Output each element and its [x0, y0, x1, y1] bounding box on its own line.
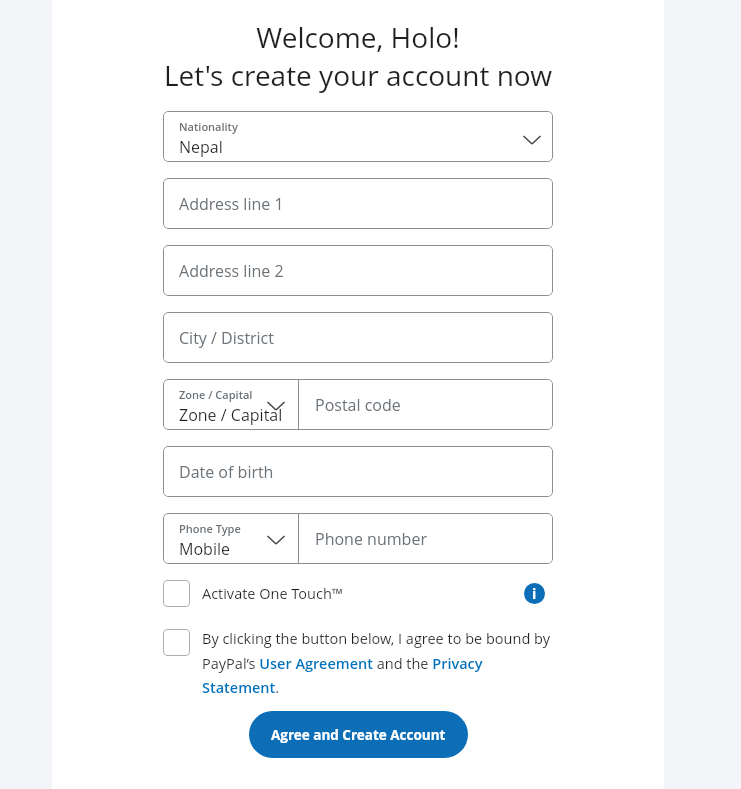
staticText: Zone / Capital [179, 387, 253, 402]
button[interactable]: Activate One Touch [163, 580, 190, 607]
staticText: City / District [179, 327, 274, 349]
button[interactable]: Zone / Capital [163, 379, 553, 430]
button[interactable]: Activate One Touch [163, 580, 553, 607]
staticText: Nepal [179, 136, 223, 158]
staticText: Phone number [315, 528, 427, 550]
staticText: Let's create your account now [164, 56, 552, 94]
staticText: i [532, 584, 537, 603]
button[interactable]: City / District [163, 312, 553, 363]
button[interactable]: Address line 1 [163, 178, 553, 229]
staticText: Activate One Touch™ [202, 584, 344, 604]
staticText: Address line 1 [179, 193, 284, 215]
staticText: Phone Type [179, 521, 241, 536]
staticText: Mobile [179, 538, 230, 560]
staticText: Postal code [315, 394, 401, 416]
button[interactable]: Nationality [163, 111, 553, 162]
staticText: Agree and Create Account [271, 726, 446, 744]
button[interactable]: More information [524, 583, 545, 604]
button[interactable]: Agree and Create Account [249, 711, 468, 758]
staticText: Welcome, Holo! [256, 18, 460, 56]
button[interactable]: Phone Type [163, 513, 553, 564]
staticText: By clicking the button below, I agree to… [202, 629, 553, 697]
staticText: Date of birth [179, 461, 274, 483]
button[interactable]: Date of birth [163, 446, 553, 497]
staticText: Nationality [179, 119, 238, 134]
button[interactable]: I agree to the terms [163, 629, 190, 656]
staticText: Zone / Capital [179, 404, 283, 426]
staticText: Address line 2 [179, 260, 284, 282]
button[interactable]: Address line 2 [163, 245, 553, 296]
